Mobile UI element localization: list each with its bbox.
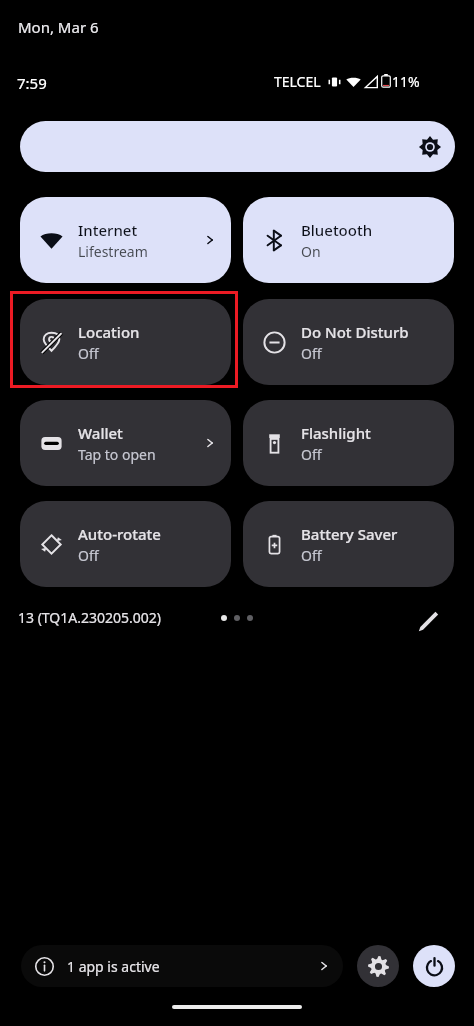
staticText: Lifestream [78,242,148,261]
button[interactable]: Do Not Disturb [243,299,454,385]
button[interactable]: 1 app is active [21,945,343,987]
staticText: 7:59 [17,73,47,93]
button[interactable]: Internet [20,197,231,283]
button[interactable]: Brightness [20,121,455,172]
button[interactable]: Battery Saver [243,501,454,587]
staticText: Location [78,322,140,342]
staticText: TELCEL [274,72,321,91]
staticText: Internet [78,220,138,240]
staticText: Bluetooth [301,220,373,240]
staticText: 1 app is active [67,957,160,976]
button[interactable]: Location [20,299,231,385]
button[interactable]: Flashlight [243,400,454,486]
staticText: Battery Saver [301,524,398,544]
staticText: 13 (TQ1A.230205.002) [18,608,162,627]
staticText: Off [78,546,99,565]
button[interactable]: Bluetooth [243,197,454,283]
button[interactable]: Auto-rotate [20,501,231,587]
staticText: 11% [392,72,420,91]
button[interactable]: Power [413,945,455,987]
button[interactable]: Wallet [20,400,231,486]
staticText: Off [301,445,322,464]
staticText: Tap to open [78,445,156,464]
staticText: Wallet [78,423,123,443]
button[interactable]: Settings [357,945,399,987]
staticText: Auto-rotate [78,524,161,544]
staticText: Flashlight [301,423,371,443]
staticText: Off [78,344,99,363]
staticText: Off [301,546,322,565]
staticText: Do Not Disturb [301,322,409,342]
staticText: Mon, Mar 6 [18,17,99,37]
staticText: Off [301,344,322,363]
staticText: On [301,242,321,261]
button[interactable]: Edit tiles [412,605,444,637]
